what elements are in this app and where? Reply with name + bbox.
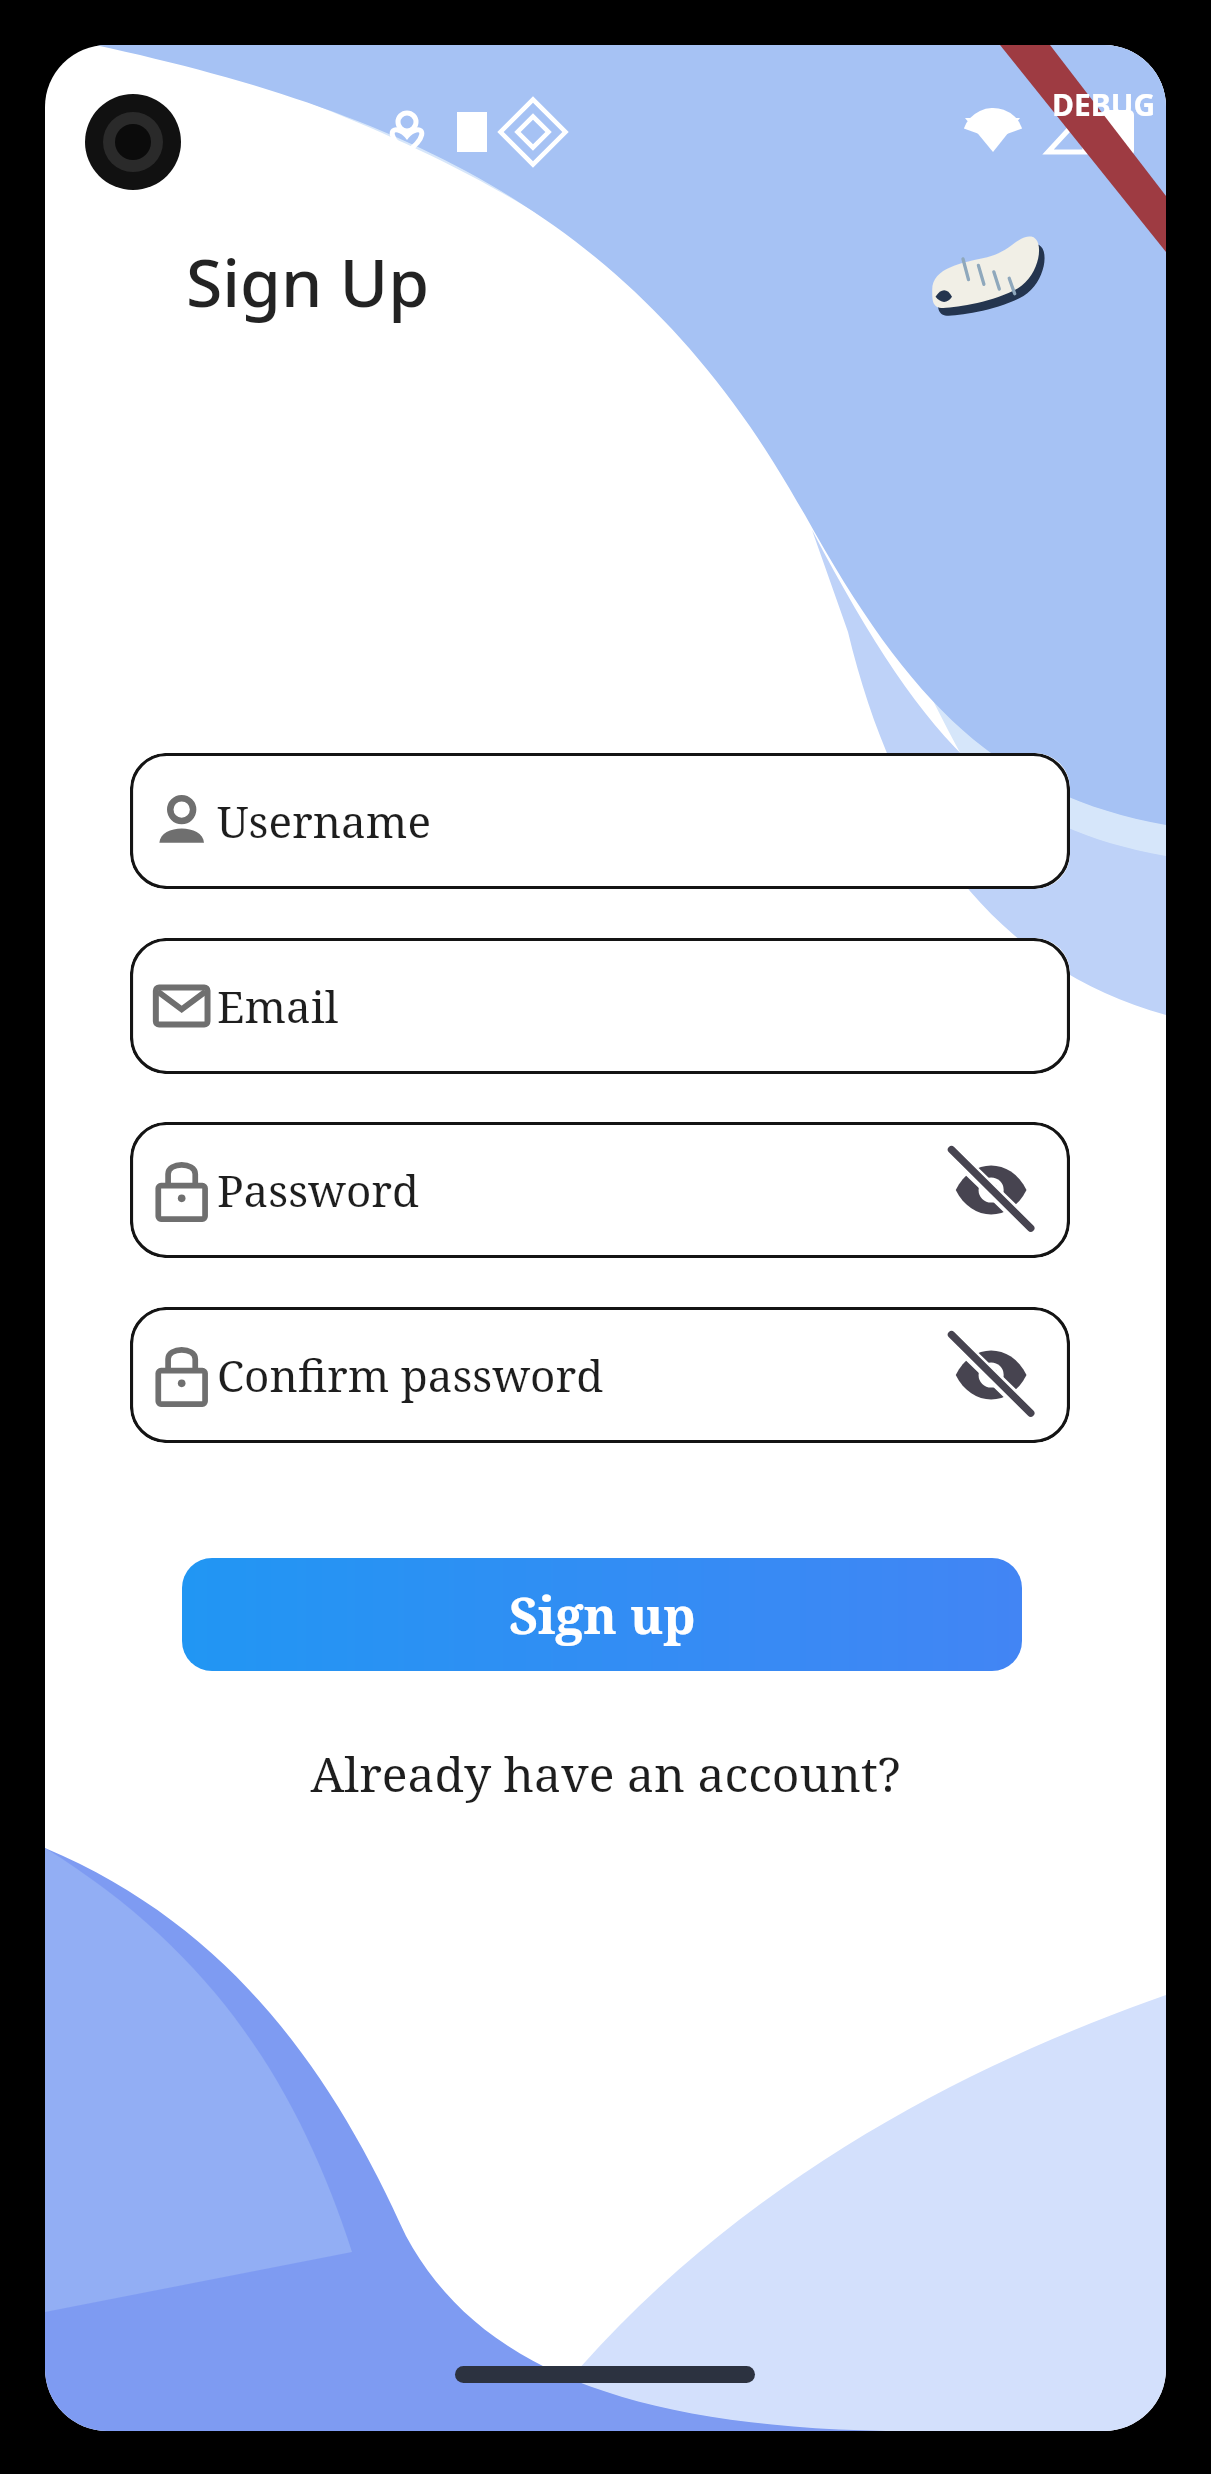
button[interactable]: Sign up — [182, 1558, 1022, 1671]
staticText: Username — [217, 791, 431, 851]
staticText: Confirm password — [217, 1345, 604, 1405]
button[interactable]: Password — [130, 1122, 1070, 1258]
button[interactable]: Already have an account? — [300, 1735, 910, 1811]
button[interactable]: Show password — [934, 1122, 1070, 1258]
staticText: Email — [217, 976, 339, 1036]
button[interactable]: Confirm password — [130, 1307, 1070, 1443]
staticText: Sign up — [509, 1581, 696, 1649]
staticText: DEBUG — [1052, 84, 1156, 125]
staticText: Already have an account? — [310, 1741, 901, 1806]
button[interactable]: Email — [130, 938, 1070, 1074]
staticText: Password — [217, 1160, 420, 1220]
button[interactable]: Username — [130, 753, 1070, 889]
button[interactable]: Show password — [934, 1307, 1070, 1443]
staticText: Sign Up — [186, 236, 430, 326]
